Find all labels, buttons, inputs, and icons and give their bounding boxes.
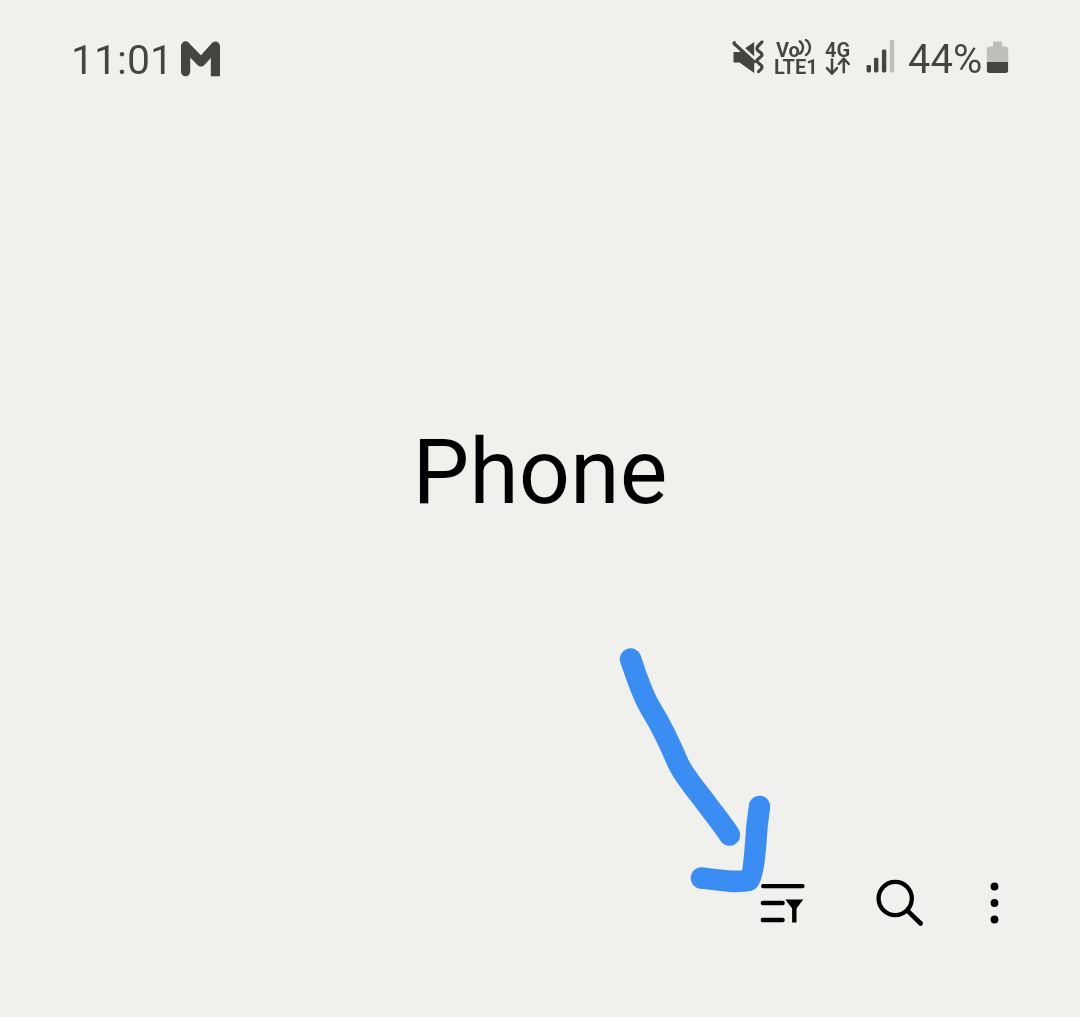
staticText: Vo [776,38,800,61]
button[interactable]: Sort and filter [742,862,822,942]
staticText: 11:01 [71,36,174,84]
staticText: 44% [908,36,983,83]
button[interactable]: Search [854,858,934,938]
staticText: LTE1 [774,55,818,78]
staticText: 4G [825,38,851,61]
staticText: Phone [0,420,1080,525]
button[interactable]: More options [955,863,1035,943]
